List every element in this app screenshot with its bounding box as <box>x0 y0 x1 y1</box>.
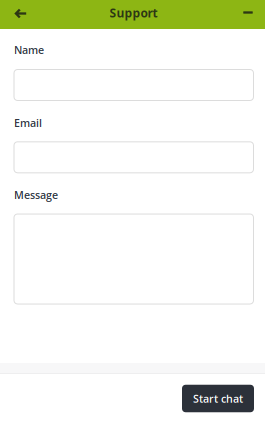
button[interactable]: Minimize <box>229 2 265 27</box>
staticText: Message <box>14 188 58 202</box>
staticText: Support <box>109 5 157 21</box>
staticText: Start chat <box>193 391 243 406</box>
staticText: Name <box>14 42 44 57</box>
button[interactable]: Email <box>14 142 253 173</box>
button[interactable]: Start chat <box>182 385 254 412</box>
button[interactable]: Message <box>14 214 253 304</box>
staticText: Email <box>14 116 42 130</box>
button[interactable]: Back <box>0 2 40 27</box>
